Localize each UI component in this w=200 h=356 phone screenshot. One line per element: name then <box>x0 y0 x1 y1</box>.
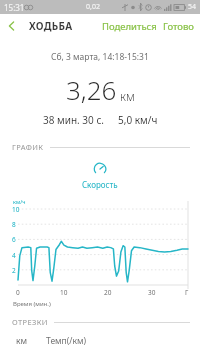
staticText: 30 <box>148 288 156 297</box>
button[interactable]: Speed <box>0 154 200 197</box>
staticText: 0 <box>16 288 20 297</box>
staticText: 10 <box>12 205 20 214</box>
staticText: км/ч <box>13 198 26 205</box>
staticText: км <box>16 335 28 347</box>
button[interactable]: Back <box>0 15 23 37</box>
staticText: Сб, 3 марта, 14:18-15:31 <box>51 51 149 63</box>
staticText: 8 <box>12 220 16 229</box>
staticText: Темп(/км) <box>46 335 87 347</box>
staticText: ОТРЕЗКИ <box>12 317 48 327</box>
staticText: 15:31 <box>4 2 25 13</box>
staticText: 4 <box>12 251 16 260</box>
other: Speed <box>93 162 107 176</box>
staticText: Г <box>185 288 189 297</box>
staticText: 38 мин. 30 с. <box>43 113 104 127</box>
staticText: 0,02 <box>86 2 100 12</box>
staticText: км <box>120 88 135 104</box>
staticText: 6 <box>12 235 16 244</box>
staticText: ХОДЬБА <box>29 19 73 33</box>
staticText: 5,0 км/ч <box>118 113 158 127</box>
button[interactable]: Поделиться <box>99 15 160 38</box>
staticText: 2 <box>12 266 16 275</box>
staticText: Поделиться <box>102 20 157 33</box>
staticText: ГРАФИК <box>12 142 44 152</box>
staticText: 3,26 <box>66 72 117 107</box>
staticText: Время (мин.) <box>13 300 51 308</box>
staticText: 10 <box>60 288 68 297</box>
staticText: Скорость <box>82 179 118 190</box>
staticText: Готово <box>163 20 194 33</box>
staticText: 20 <box>104 288 112 297</box>
staticText: 54 <box>188 2 197 12</box>
button[interactable]: Готово <box>160 15 200 38</box>
